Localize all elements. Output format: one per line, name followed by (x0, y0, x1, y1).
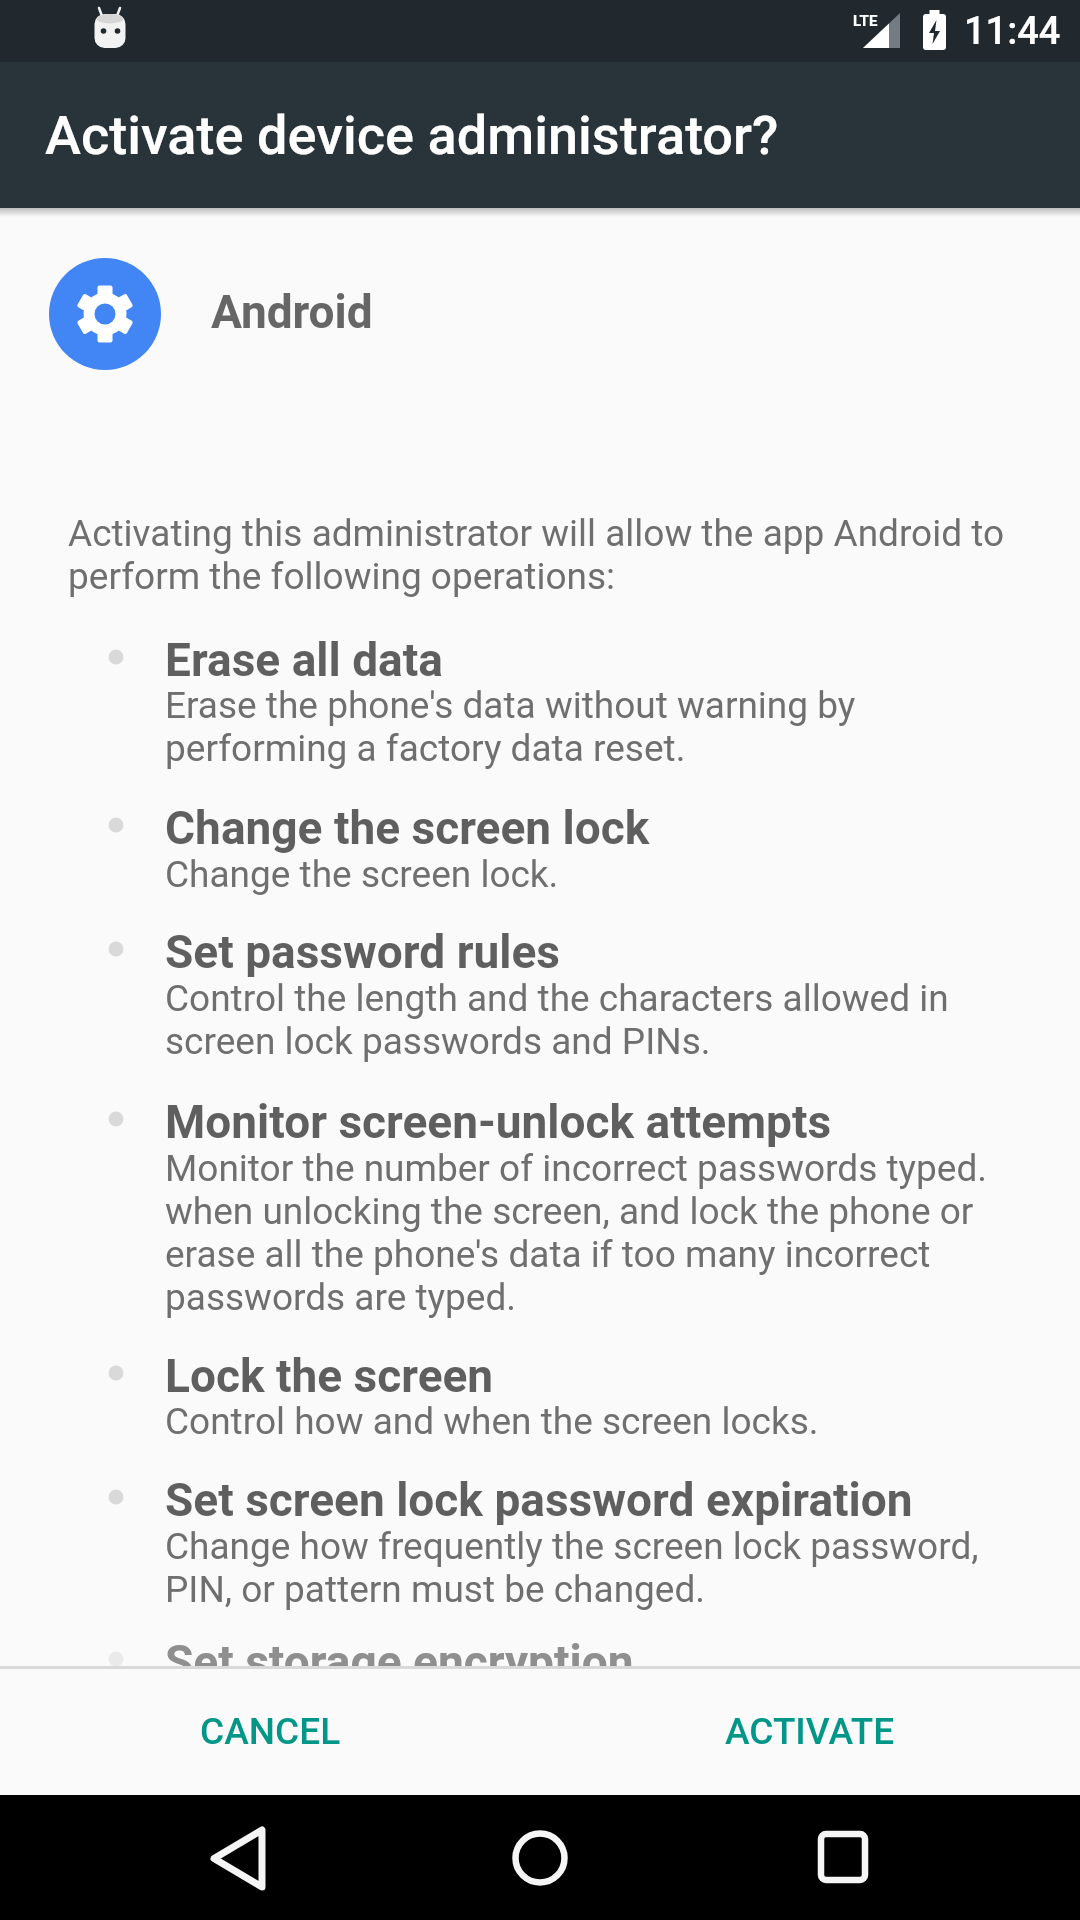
staticText: 11:44 (964, 9, 1061, 54)
button[interactable]: CANCEL (0, 1668, 540, 1795)
staticText: Change how frequently the screen lock pa… (165, 1525, 979, 1611)
staticText: Activate device administrator? (45, 104, 779, 167)
staticText: Control the length and the characters al… (165, 977, 949, 1063)
staticText: CANCEL (200, 1710, 341, 1753)
staticText: Monitor the number of incorrect password… (165, 1147, 988, 1319)
staticText: Set screen lock password expiration (165, 1473, 913, 1527)
button[interactable] (178, 1809, 298, 1905)
staticText: Lock the screen (165, 1349, 494, 1403)
staticText: Monitor screen-unlock attempts (165, 1095, 832, 1149)
button[interactable]: ACTIVATE (540, 1668, 1080, 1795)
staticText: Erase the phone's data without warning b… (165, 684, 856, 770)
staticText: Change the screen lock. (165, 853, 559, 896)
staticText: Set password rules (165, 925, 560, 979)
staticText: Control how and when the screen locks. (165, 1400, 819, 1443)
staticText: Set storage encryption (165, 1635, 634, 1666)
staticText: LTE (853, 12, 878, 27)
staticText: Android (211, 285, 373, 339)
staticText: ACTIVATE (725, 1710, 895, 1753)
staticText: Erase all data (165, 633, 443, 687)
button[interactable] (480, 1809, 600, 1905)
button[interactable] (783, 1809, 903, 1905)
staticText: Activating this administrator will allow… (68, 512, 1005, 598)
staticText: Change the screen lock (165, 801, 650, 855)
